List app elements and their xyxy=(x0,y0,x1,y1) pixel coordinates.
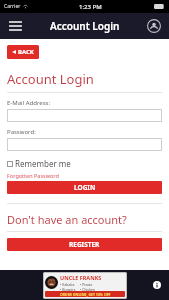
staticText: 1:23 PM xyxy=(79,3,102,11)
staticText: Remember me xyxy=(15,158,71,169)
staticText: BACK xyxy=(18,48,34,56)
button[interactable] xyxy=(7,109,162,122)
staticText: E-Mail Address: xyxy=(7,99,51,107)
button[interactable]: BACK xyxy=(7,45,39,59)
button[interactable]: Account xyxy=(144,16,164,36)
staticText: Carrier xyxy=(4,3,21,10)
button[interactable]: Forgotten Password xyxy=(7,172,59,179)
staticText: • Kebabs xyxy=(60,282,75,287)
staticText: • Burgers xyxy=(60,287,76,291)
button[interactable]: Ad information xyxy=(151,279,163,291)
staticText: LOGIN xyxy=(74,183,96,192)
staticText: Password: xyxy=(7,128,36,136)
staticText: • Pizzas xyxy=(80,282,93,287)
staticText: ORDER ONLINE, GET 10% OFF xyxy=(60,292,111,297)
button[interactable]: Menu xyxy=(5,16,25,36)
button[interactable]: Remember me xyxy=(7,158,71,169)
staticText: • Chicken xyxy=(80,287,96,291)
button[interactable]: REGISTER xyxy=(7,238,162,251)
staticText: Don't have an account? xyxy=(7,212,127,227)
staticText: REGISTER xyxy=(69,240,100,249)
button[interactable] xyxy=(7,138,162,151)
staticText: Account Login xyxy=(7,70,94,88)
staticText: Account Login xyxy=(50,19,120,33)
button[interactable]: Uncle Franks advertisement xyxy=(43,272,127,299)
staticText: UNCLE FRANKS xyxy=(60,274,102,281)
button[interactable]: LOGIN xyxy=(7,181,162,194)
